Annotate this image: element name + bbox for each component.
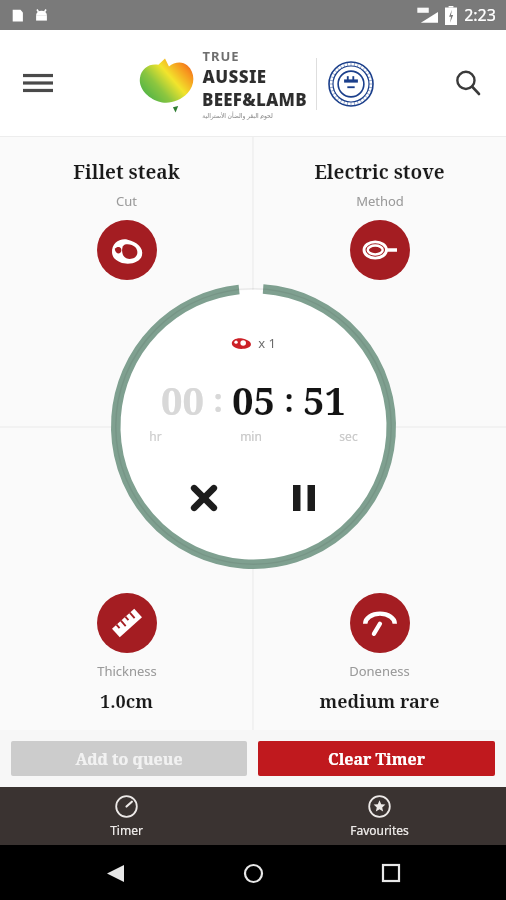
staticText: : [213, 378, 223, 422]
button[interactable]: Doneness [253, 593, 506, 714]
staticText: sec [339, 428, 358, 444]
staticText: medium rare [319, 689, 440, 714]
button[interactable]: Stop timer [177, 471, 231, 525]
staticText: TRUE [202, 47, 240, 65]
staticText: 1.0cm [100, 689, 153, 714]
staticText: Timer [110, 822, 143, 838]
staticText: Doneness [349, 662, 410, 680]
staticText: 51 [303, 374, 346, 426]
staticText: 05 [232, 374, 275, 426]
staticText: Thickness [97, 662, 157, 680]
staticText: لحوم البقر والضأن الأسترالية [202, 112, 273, 120]
staticText: 00 [161, 374, 204, 426]
button[interactable]: Timer [0, 787, 253, 845]
button[interactable]: Search [444, 59, 492, 107]
staticText: BEEF&LAMB [202, 88, 307, 111]
button[interactable]: Back [92, 850, 138, 896]
button[interactable]: Clear Timer [258, 741, 495, 776]
staticText: Electric stove [314, 159, 445, 185]
button[interactable]: Add to queue [11, 741, 247, 776]
staticText: : [284, 378, 294, 422]
button[interactable]: Thickness [0, 593, 253, 714]
staticText: x 1 [258, 334, 276, 352]
staticText: Clear Timer [328, 748, 425, 770]
button[interactable]: Menu [14, 59, 62, 107]
staticText: Favourites [350, 822, 409, 838]
staticText: Add to queue [75, 748, 183, 770]
staticText: Fillet steak [73, 159, 180, 185]
button[interactable]: Favourites [253, 787, 506, 845]
button[interactable] [350, 220, 410, 280]
staticText: AUSSIE [202, 65, 267, 88]
button[interactable]: Electric stove [253, 159, 506, 280]
staticText: 2:23 [464, 4, 496, 26]
button[interactable]: Home [230, 850, 276, 896]
staticText: min [240, 428, 262, 444]
staticText: hr [149, 428, 162, 444]
button[interactable] [97, 593, 157, 653]
staticText: Method [356, 192, 404, 210]
button[interactable] [97, 220, 157, 280]
button[interactable] [350, 593, 410, 653]
button[interactable]: Recent apps [368, 850, 414, 896]
button[interactable]: Pause timer [277, 471, 331, 525]
staticText: Cut [116, 192, 137, 210]
button[interactable]: Fillet steak [0, 159, 253, 280]
